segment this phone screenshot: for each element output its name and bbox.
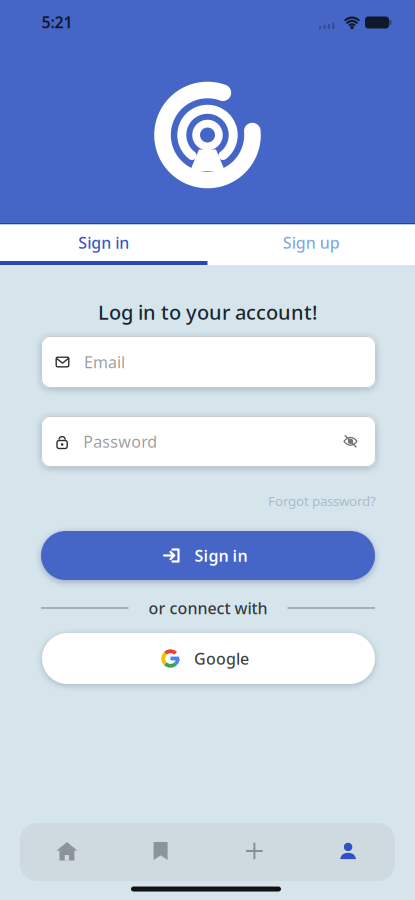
staticText: Sign in [194,545,247,566]
button[interactable]: Show password [343,435,358,448]
button[interactable]: Add [214,826,294,876]
staticText: Google [194,648,249,669]
button[interactable]: Sign in [41,531,375,580]
staticText: 5:21 [41,11,72,33]
staticText: Sign in [78,232,129,253]
button[interactable]: Profile [308,826,388,876]
button[interactable]: Home [27,826,107,876]
button[interactable]: Bookmarks [121,826,201,876]
button[interactable]: Google [42,633,375,684]
staticText: Log in to your account! [98,299,317,325]
button[interactable]: Sign in [0,224,207,260]
button[interactable]: Sign up [207,224,415,260]
button[interactable]: Forgot password? [268,492,376,510]
staticText: Sign up [283,232,340,253]
staticText: Email [84,351,125,373]
staticText: Forgot password? [268,492,376,510]
staticText: Password [83,431,157,452]
staticText: or connect with [148,597,267,619]
